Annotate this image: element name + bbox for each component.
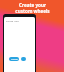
button[interactable]: Create — [9, 57, 19, 61]
staticText: Create your — [19, 2, 46, 8]
staticText: Create — [11, 58, 18, 61]
staticText: Should I use — [6, 20, 19, 23]
button[interactable]: Add — [21, 57, 26, 61]
staticText: custom wheels — [15, 8, 50, 14]
